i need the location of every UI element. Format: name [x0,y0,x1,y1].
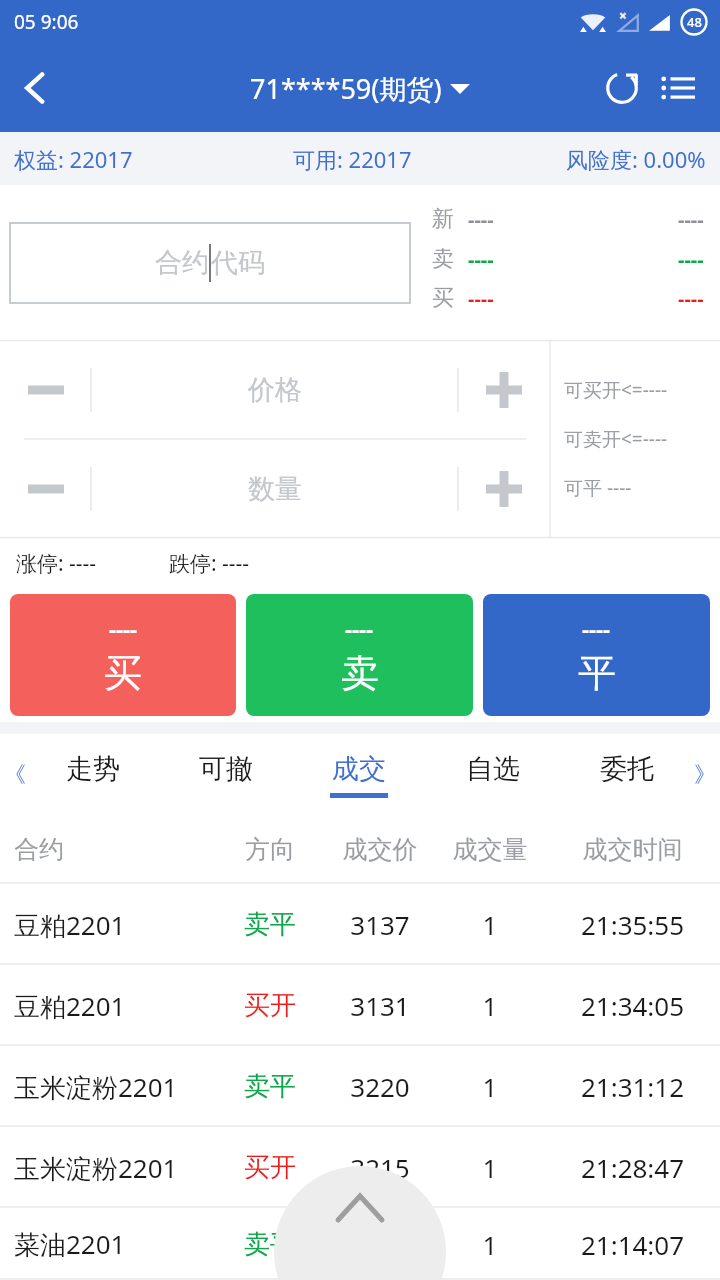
staticText: 可买开<=---- [564,377,668,403]
staticText: 走势 [66,752,120,786]
staticText: ---- [678,206,704,233]
staticText: 1 [435,1150,545,1185]
staticText: 买开 [215,989,325,1022]
staticText: 成交量 [435,834,545,865]
staticText: 成交时间 [545,834,720,865]
staticText: 3220 [325,1069,435,1104]
staticText: 玉米淀粉2201 [14,1069,215,1105]
staticText: 1 [435,1069,545,1104]
staticText: 1 [435,988,545,1023]
staticText: ---- [678,246,704,273]
button[interactable]: 合约 [10,223,410,303]
staticText: ---- [582,613,611,643]
staticText: 卖平 [215,1070,325,1103]
staticText: 自选 [466,752,520,786]
staticText: 21:31:12 [545,1069,720,1104]
staticText: 合约 [14,834,215,865]
staticText: 涨停: ---- [16,549,97,578]
staticText: 可撤 [199,752,253,786]
staticText: 方向 [215,834,325,865]
staticText: ---- [468,206,494,233]
staticText: 买开 [215,1151,325,1184]
button[interactable]: 玉米淀粉2201 [0,1127,720,1208]
staticText: 代码 [211,246,265,280]
staticText: ---- [468,246,494,273]
staticText: 平 [578,649,616,697]
staticText: 可卖开<=---- [564,426,668,452]
button[interactable]: Scroll up [274,1166,446,1280]
staticText: 21:28:47 [545,1150,720,1185]
staticText: 《 [4,761,26,789]
button[interactable]: 成交 [292,734,426,815]
button[interactable]: ---- [246,594,473,716]
staticText: 玉米淀粉2201 [14,1150,215,1186]
staticText: 3137 [325,907,435,942]
button[interactable]: 数量 [91,439,458,538]
staticText: 新 [432,205,454,233]
staticText: 价格 [248,373,302,407]
button[interactable]: Increase 价格 [458,340,550,439]
staticText: 》 [694,761,716,789]
staticText: 合约 [155,246,209,280]
staticText: 05 9:06 [14,9,79,35]
staticText: 买 [432,284,454,312]
staticText: ---- [468,285,494,312]
staticText: 成交 [332,752,386,786]
staticText: 1 [435,1227,545,1262]
button[interactable]: 玉米淀粉2201 [0,1046,720,1127]
staticText: 3131 [325,988,435,1023]
staticText: 21:35:55 [545,907,720,942]
staticText: 可用: 22017 [293,144,412,174]
button[interactable]: 豆粕2201 [0,965,720,1046]
staticText: 可平 ---- [564,475,632,501]
staticText: 71****59(期货) [250,70,442,107]
staticText: 风险度: 0.00% [566,144,706,174]
staticText: 数量 [248,472,302,506]
staticText: 菜油2201 [14,1226,215,1262]
button[interactable]: 自选 [426,734,560,815]
button[interactable]: 71****59(期货) [250,70,470,107]
staticText: 跌停: ---- [169,549,250,578]
button[interactable]: 可撤 [159,734,292,815]
staticText: 豆粕2201 [14,988,215,1024]
button[interactable]: ---- [10,594,236,716]
staticText: 21:14:07 [545,1227,720,1262]
staticText: 48 [687,13,702,31]
button[interactable]: 走势 [26,734,159,815]
button[interactable]: ---- [483,594,710,716]
button[interactable]: Back [0,44,70,132]
staticText: 卖平 [215,908,325,941]
staticText: 委托 [600,752,654,786]
staticText: ---- [345,613,374,643]
button[interactable]: Menu [650,60,706,116]
staticText: 1 [435,907,545,942]
staticText: 卖平 [215,1228,325,1261]
staticText: 卖 [341,649,379,697]
staticText: ---- [109,613,138,643]
button[interactable]: Increase 数量 [458,439,550,538]
staticText: 豆粕2201 [14,907,215,943]
button[interactable]: 委托 [560,734,694,815]
button[interactable]: Decrease 价格 [0,340,91,439]
staticText: 卖 [432,245,454,273]
button[interactable]: 豆粕2201 [0,884,720,965]
staticText: 买 [104,649,142,697]
staticText: 权益: 22017 [14,144,133,174]
button[interactable]: 价格 [91,340,458,439]
button[interactable]: 菜油2201 [0,1208,720,1280]
staticText: 21:34:05 [545,988,720,1023]
staticText: ---- [678,285,704,312]
staticText: 3215 [325,1150,435,1185]
staticText: 成交价 [325,834,435,865]
button[interactable]: Refresh [594,60,650,116]
button[interactable]: Decrease 数量 [0,439,91,538]
